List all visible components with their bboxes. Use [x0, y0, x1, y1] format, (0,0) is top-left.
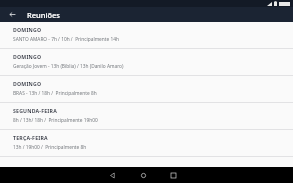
staticText: SEGUNDA-FEIRA: [13, 107, 57, 114]
button[interactable]: DOMINGO: [0, 22, 293, 49]
button[interactable]: SEGUNDA-FEIRA: [0, 103, 293, 130]
staticText: DOMINGO: [13, 53, 42, 60]
button[interactable]: Recent apps: [165, 167, 181, 183]
staticText: DOMINGO: [13, 26, 42, 33]
staticText: 8h / 13h/ 18h / Principalmente 19h00: [13, 117, 98, 124]
button[interactable]: DOMINGO: [0, 76, 293, 103]
button[interactable]: Back: [6, 8, 19, 21]
staticText: 13h / 19h00 / Principalmente 8h: [13, 144, 87, 151]
staticText: Geração Jovem - 13h (Bíblia) / 13h (Dani…: [13, 63, 124, 70]
staticText: Reuniões: [27, 10, 61, 20]
button[interactable]: Home: [135, 167, 151, 183]
button[interactable]: Back: [104, 167, 120, 183]
button[interactable]: DOMINGO: [0, 49, 293, 76]
staticText: DOMINGO: [13, 80, 42, 87]
button[interactable]: TERÇA-FEIRA: [0, 130, 293, 157]
staticText: SANTO AMARO - 7h / 10h / Principalmente …: [13, 36, 119, 43]
staticText: BRAS - 13h / 18h / Principalmente 8h: [13, 90, 97, 97]
staticText: TERÇA-FEIRA: [13, 134, 48, 141]
